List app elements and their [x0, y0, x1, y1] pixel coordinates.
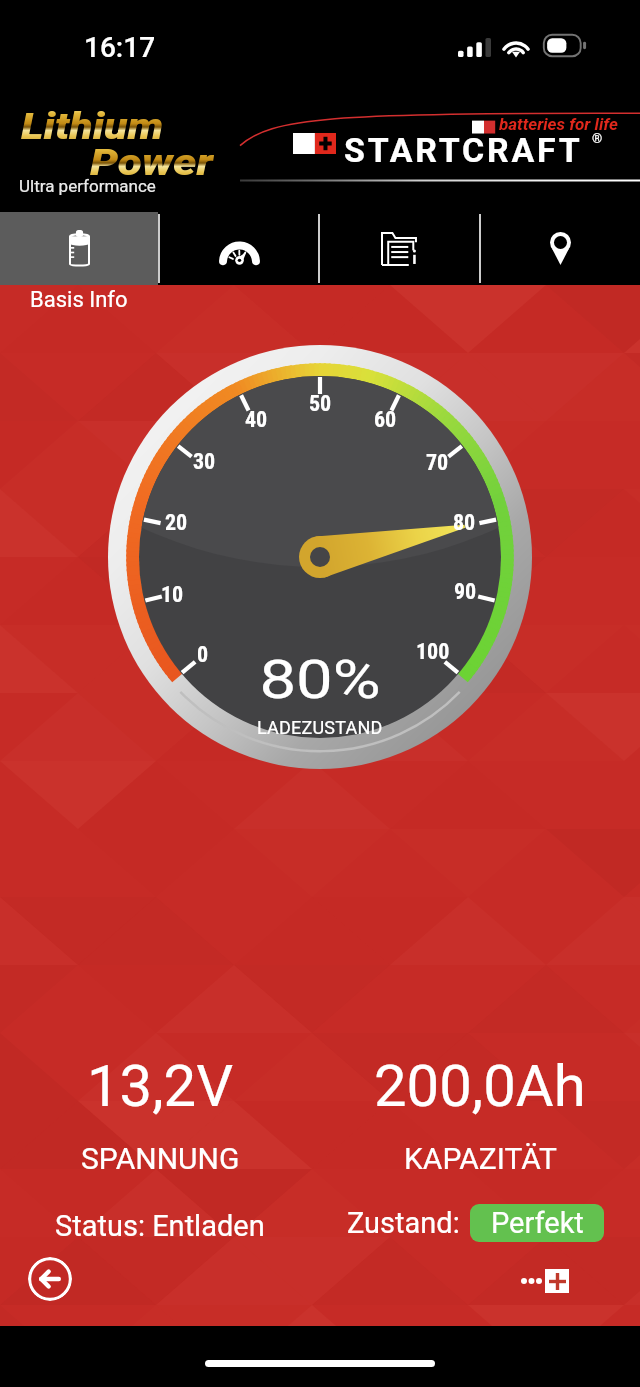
staticText: Zustand:	[347, 1206, 460, 1240]
staticText: 20	[165, 510, 188, 536]
staticText: Status: Entladen	[55, 1209, 265, 1243]
staticText: Ultra performance	[19, 176, 156, 196]
staticText: 70	[426, 450, 449, 476]
staticText: LADEZUSTAND	[257, 717, 383, 738]
button[interactable]: Documents	[320, 212, 479, 285]
staticText: 80%	[259, 648, 382, 711]
staticText: 13,2V	[87, 1052, 234, 1120]
staticText: Basis Info	[30, 287, 128, 313]
staticText: KAPAZITÄT	[404, 1141, 557, 1176]
staticText: batteries for life	[499, 114, 618, 134]
staticText: 200,0Ah	[374, 1052, 586, 1120]
button[interactable]: Gauge	[160, 212, 318, 285]
staticText: 100	[416, 639, 450, 665]
staticText: 30	[193, 449, 216, 475]
staticText: 80	[453, 510, 476, 536]
button[interactable]: Battery	[0, 212, 158, 285]
staticText: 60	[374, 407, 397, 433]
staticText: 10	[161, 582, 184, 608]
staticText: 50	[309, 391, 332, 417]
button[interactable]: Back	[28, 1257, 72, 1301]
button[interactable]: Perfekt	[470, 1204, 604, 1242]
staticText: 0	[197, 642, 209, 668]
button[interactable]: Add	[545, 1269, 569, 1293]
staticText: Power	[90, 142, 213, 184]
staticText: STARTCRAFT	[344, 130, 582, 170]
button[interactable]: Location	[481, 212, 640, 285]
staticText: 90	[454, 579, 477, 605]
staticText: Perfekt	[491, 1206, 584, 1240]
staticText: ®	[592, 131, 603, 146]
staticText: 40	[245, 407, 268, 433]
staticText: Lithium	[21, 106, 164, 148]
staticText: 16:17	[84, 31, 156, 64]
staticText: SPANNUNG	[81, 1141, 240, 1176]
